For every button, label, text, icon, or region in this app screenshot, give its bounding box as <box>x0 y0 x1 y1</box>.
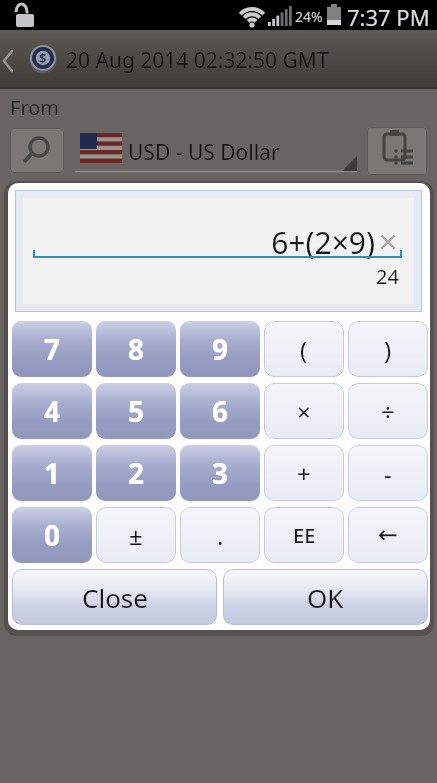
staticText: From <box>10 94 60 121</box>
button[interactable]: 3 <box>180 445 260 501</box>
staticText: ← <box>378 521 399 549</box>
staticText: 0 <box>44 516 61 554</box>
staticText: 5 <box>128 392 145 430</box>
staticText: - <box>384 457 392 490</box>
button[interactable]: 9 <box>180 321 260 377</box>
staticText: 4 <box>44 392 61 430</box>
staticText: + <box>297 457 311 490</box>
button[interactable] <box>10 128 64 173</box>
staticText: OK <box>307 580 344 615</box>
button[interactable]: + <box>264 445 344 501</box>
staticText: × <box>297 395 311 428</box>
button[interactable] <box>75 130 357 172</box>
button[interactable]: 4 <box>12 383 92 439</box>
staticText: 6+(2×9) <box>15 222 375 263</box>
button[interactable] <box>376 230 400 254</box>
button[interactable]: 1 <box>12 445 92 501</box>
button[interactable]: 2 <box>96 445 176 501</box>
button[interactable]: 6 <box>180 383 260 439</box>
button[interactable]: . <box>180 507 260 563</box>
button[interactable]: 5 <box>96 383 176 439</box>
staticText: $ <box>39 49 47 67</box>
staticText: 20 Aug 2014 02:32:50 GMT <box>66 46 329 75</box>
button[interactable]: 8 <box>96 321 176 377</box>
button[interactable]: - <box>348 445 428 501</box>
button[interactable]: ) <box>348 321 428 377</box>
button[interactable]: EE <box>264 507 344 563</box>
button[interactable]: × <box>264 383 344 439</box>
button[interactable]: ÷ <box>348 383 428 439</box>
staticText: 8 <box>128 330 145 368</box>
button[interactable]: OK <box>223 569 428 625</box>
staticText: 7 <box>44 330 61 368</box>
button[interactable]: ← <box>348 507 428 563</box>
staticText: ÷ <box>381 395 395 428</box>
button[interactable]: ( <box>264 321 344 377</box>
staticText: . <box>217 519 224 552</box>
button[interactable]: ± <box>96 507 176 563</box>
staticText: 24% <box>295 7 323 26</box>
staticText: EE <box>293 522 316 549</box>
staticText: ( <box>300 333 308 366</box>
staticText: 7:37 PM <box>347 2 430 32</box>
staticText: USD - US Dollar <box>128 138 280 167</box>
staticText: Close <box>82 580 148 615</box>
staticText: 2 <box>128 454 145 492</box>
staticText: 24 <box>15 263 399 290</box>
staticText: ± <box>129 519 143 552</box>
staticText: 1 <box>44 454 61 492</box>
staticText: 9 <box>212 330 229 368</box>
button[interactable]: 7 <box>12 321 92 377</box>
button[interactable]: Close <box>12 569 217 625</box>
staticText: ) <box>384 333 392 366</box>
button[interactable] <box>367 127 427 175</box>
button[interactable]: 0 <box>12 507 92 563</box>
staticText: 6 <box>212 392 229 430</box>
staticText: 3 <box>212 454 229 492</box>
